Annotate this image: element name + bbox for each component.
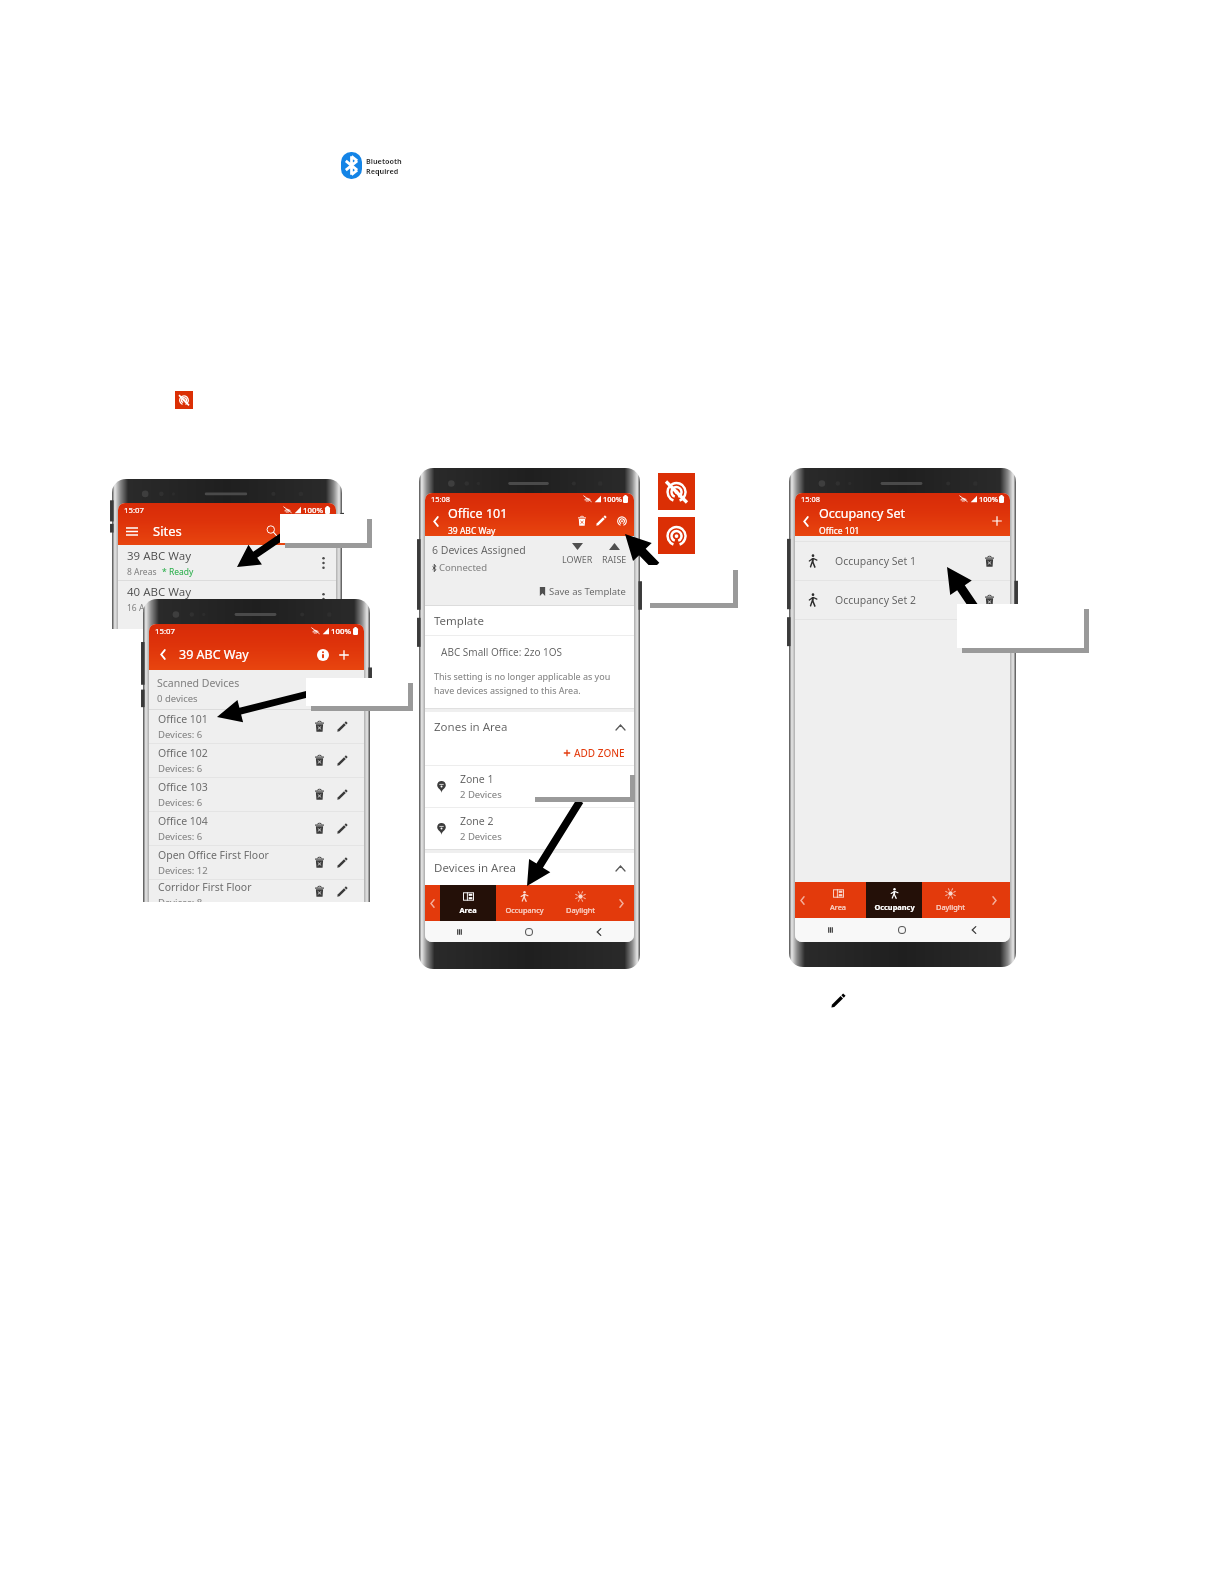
staticText: RAISE — [602, 553, 627, 565]
button[interactable]: Delete — [311, 752, 328, 769]
button[interactable]: Home — [494, 921, 564, 942]
button[interactable]: Edit — [334, 718, 351, 735]
button[interactable]: Area — [440, 885, 496, 921]
button[interactable]: Edit — [334, 786, 351, 803]
button[interactable]: Delete — [981, 553, 998, 570]
button[interactable]: Delete — [981, 592, 998, 609]
staticText: ABC Small Office: 2zo 1OS — [441, 645, 563, 659]
button[interactable]: Open Office First Floor — [149, 846, 364, 879]
button[interactable]: Search — [264, 523, 280, 539]
button[interactable]: Devices in Area — [434, 860, 625, 876]
staticText: Daylight — [566, 905, 595, 915]
other: Sensor disabled — [175, 391, 193, 409]
button[interactable]: Back — [798, 513, 814, 529]
other: Sensor off — [658, 473, 695, 510]
staticText: Occupancy — [505, 905, 544, 915]
staticText: ADD ZONE — [574, 746, 625, 760]
button[interactable]: Sensor — [614, 513, 629, 528]
staticText: Zone 2 — [460, 814, 494, 828]
button[interactable]: Office 101 — [149, 710, 364, 743]
staticText: LOWER — [562, 553, 593, 565]
staticText: Template — [434, 613, 484, 629]
button[interactable]: Add — [335, 646, 352, 663]
staticText: This setting is no longer applicable as … — [434, 670, 631, 697]
staticText: 15:08 — [431, 494, 450, 504]
button[interactable]: Delete — [311, 883, 328, 900]
button[interactable]: Occupancy — [496, 885, 552, 921]
button[interactable]: LOWER — [562, 543, 593, 565]
button[interactable]: Home — [866, 918, 938, 942]
button[interactable]: Menu — [124, 523, 140, 539]
button[interactable]: Add — [989, 513, 1005, 529]
button[interactable]: Back — [564, 921, 634, 942]
button[interactable]: 40 ABC Way — [118, 581, 336, 616]
button[interactable]: Office 104 — [149, 812, 364, 845]
staticText: Open Office First Floor — [158, 848, 269, 862]
button[interactable]: Recents — [795, 918, 866, 942]
button[interactable]: Delete — [311, 786, 328, 803]
button[interactable]: Edit — [334, 752, 351, 769]
button[interactable]: Delete — [311, 820, 328, 837]
button[interactable]: Occupancy Set 1 — [795, 542, 1010, 580]
staticText: * Ready — [162, 566, 194, 578]
staticText: Occupancy Set 1 — [835, 554, 916, 568]
button[interactable]: Edit — [334, 854, 351, 871]
staticText: Occupancy Set — [819, 505, 905, 522]
staticText: Daylight — [936, 902, 965, 912]
button[interactable]: Delete — [311, 854, 328, 871]
button[interactable]: Zones in Area — [434, 719, 625, 735]
staticText: 0 devices — [157, 692, 198, 705]
staticText: Devices: 6 — [158, 762, 203, 775]
button[interactable]: Daylight — [922, 882, 978, 918]
button[interactable]: Previous tab — [425, 885, 440, 921]
staticText: Required — [366, 166, 399, 176]
staticText: Office 101 — [819, 525, 860, 536]
staticText: Devices: 12 — [158, 864, 208, 877]
button[interactable]: Area — [810, 882, 866, 918]
button[interactable]: Delete — [574, 513, 589, 528]
button[interactable]: Zone 2 — [425, 808, 634, 849]
button[interactable]: Office 102 — [149, 744, 364, 777]
button[interactable]: Edit — [334, 883, 351, 900]
button[interactable]: Next tab — [978, 882, 1010, 918]
staticText: 100% — [603, 494, 622, 504]
staticText: 39 ABC Way — [179, 646, 249, 663]
button[interactable]: Zone 1 — [425, 766, 634, 807]
staticText: 100% — [303, 505, 324, 516]
button[interactable]: RAISE — [602, 543, 627, 565]
button[interactable]: Occupancy — [866, 882, 922, 918]
staticText: Zone 1 — [460, 772, 494, 786]
button[interactable]: Delete — [311, 718, 328, 735]
button[interactable]: Save as Template — [425, 585, 626, 598]
button[interactable]: Edit — [334, 820, 351, 837]
other: Sensor on — [658, 517, 695, 554]
button[interactable]: More options — [315, 555, 331, 571]
staticText: 15:07 — [155, 626, 175, 637]
button[interactable]: Back — [938, 918, 1010, 942]
button[interactable]: Info — [314, 646, 331, 663]
button[interactable]: Edit — [594, 513, 609, 528]
button[interactable]: Corridor First Floor — [149, 880, 364, 902]
staticText: 2 Devices — [460, 830, 502, 843]
staticText: 15:07 — [124, 505, 144, 516]
staticText: 8 Areas — [127, 566, 157, 578]
button[interactable]: Office 103 — [149, 778, 364, 811]
staticText: Devices: 6 — [158, 830, 203, 843]
staticText: Bluetooth — [366, 156, 402, 166]
staticText: 15:08 — [801, 494, 820, 504]
button[interactable]: Daylight — [552, 885, 608, 921]
staticText: 39 ABC Way — [448, 525, 496, 536]
button[interactable]: 39 ABC Way — [118, 545, 336, 580]
button[interactable]: Previous tab — [795, 882, 810, 918]
button[interactable]: Back — [154, 646, 171, 663]
staticText: Occupancy Set 2 — [835, 593, 916, 607]
button[interactable]: Occupancy Set 2 — [795, 581, 1010, 619]
button[interactable]: More options — [315, 591, 331, 607]
staticText: Office 103 — [158, 780, 208, 794]
button[interactable]: ADD ZONE — [425, 746, 625, 760]
staticText: Connected — [439, 561, 488, 574]
button[interactable]: Next tab — [608, 885, 634, 921]
staticText: Office 104 — [158, 814, 208, 828]
button[interactable]: Recents — [425, 921, 494, 942]
button[interactable]: Back — [428, 513, 444, 529]
